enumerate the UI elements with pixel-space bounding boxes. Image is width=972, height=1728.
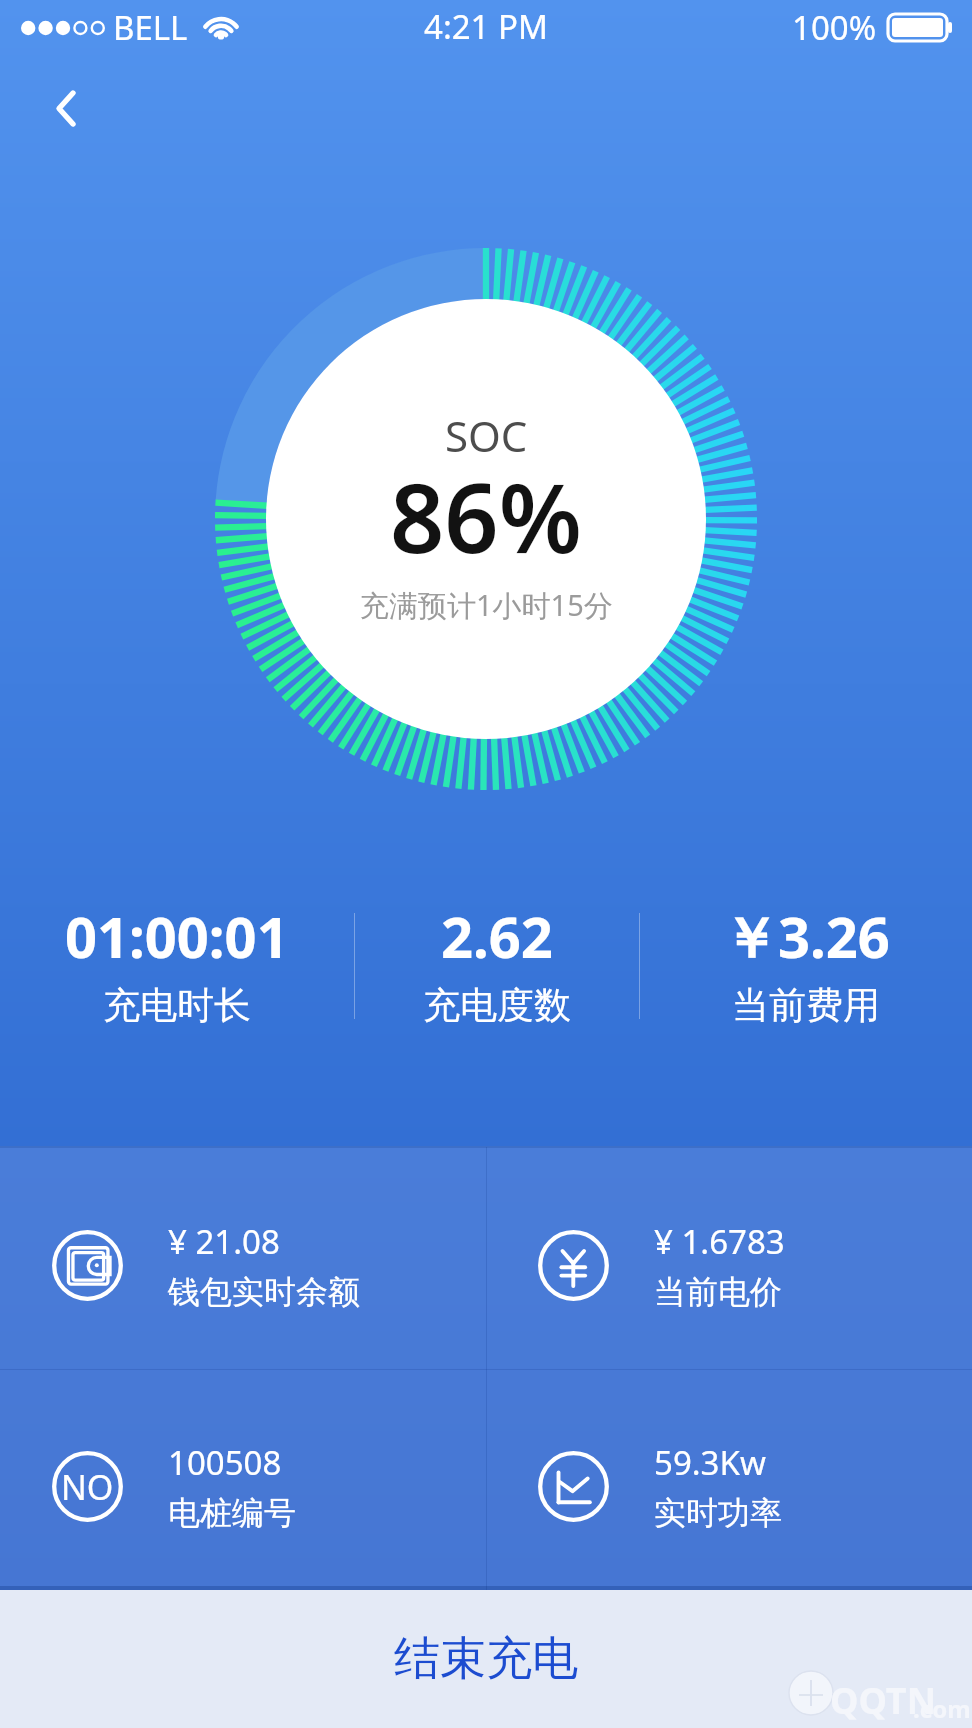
staticText: 钱包实时余额 xyxy=(168,1272,360,1312)
button[interactable]: 01:00:01 xyxy=(0,889,354,1029)
staticText: 当前费用 xyxy=(732,982,880,1029)
button[interactable]: 2.62 xyxy=(354,889,640,1029)
staticText: 充电度数 xyxy=(423,982,571,1029)
staticText: 86% xyxy=(390,451,582,580)
staticText: 4:21 PM xyxy=(424,4,548,49)
staticText: 实时功率 xyxy=(654,1493,782,1533)
staticText: 当前电价 xyxy=(654,1272,782,1312)
staticText: BELL xyxy=(113,5,188,50)
staticText: 充满预计1小时15分 xyxy=(360,585,613,625)
staticText: 100508 xyxy=(168,1440,282,1485)
staticText: ¥ 21.08 xyxy=(168,1219,280,1264)
staticText: ￥3.26 xyxy=(722,898,890,974)
staticText: .com xyxy=(913,1692,971,1725)
button[interactable]: ￥3.26 xyxy=(640,889,972,1029)
staticText: ¥ 1.6783 xyxy=(654,1219,785,1264)
button[interactable]: Back xyxy=(22,65,110,153)
button[interactable]: ¥ 21.08 xyxy=(0,1147,486,1369)
staticText: 01:00:01 xyxy=(65,898,289,974)
button[interactable]: 结束充电 xyxy=(0,1590,972,1728)
staticText: 59.3Kw xyxy=(654,1440,766,1485)
staticText: NO xyxy=(61,1464,114,1510)
staticText: SOC xyxy=(445,407,528,464)
staticText: 电桩编号 xyxy=(168,1493,296,1533)
button[interactable]: ¥ 1.6783 xyxy=(486,1147,972,1369)
staticText: 100% xyxy=(792,5,877,50)
staticText: 结束充电 xyxy=(394,1630,578,1688)
button[interactable]: NO xyxy=(0,1369,486,1590)
staticText: 充电时长 xyxy=(103,982,251,1029)
button[interactable]: 59.3Kw xyxy=(486,1369,972,1590)
staticText: 2.62 xyxy=(441,898,553,974)
staticText: QQTN xyxy=(830,1676,936,1725)
